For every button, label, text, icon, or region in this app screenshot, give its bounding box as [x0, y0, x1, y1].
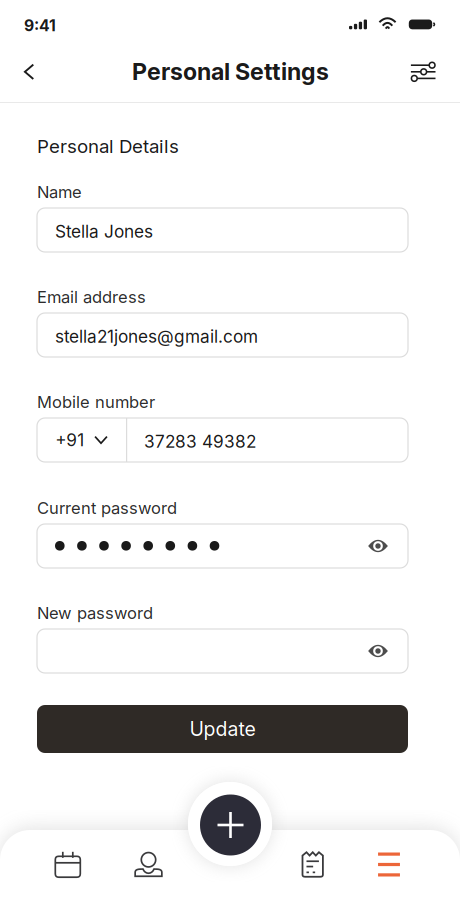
button[interactable]: Update: [37, 705, 408, 753]
button[interactable]: Calendar: [40, 838, 96, 890]
staticText: 37283 49382: [144, 431, 256, 452]
staticText: Name: [37, 182, 82, 202]
staticText: Stella Jones: [55, 221, 153, 242]
staticText: 9:41: [24, 16, 56, 35]
staticText: New password: [37, 603, 153, 623]
button[interactable]: Menu: [361, 838, 417, 890]
staticText: Current password: [37, 498, 177, 518]
button[interactable]: Profile: [120, 838, 176, 890]
button[interactable]: Add: [200, 794, 261, 855]
staticText: Mobile number: [37, 392, 155, 412]
staticText: +91: [55, 430, 84, 450]
staticText: Personal Details: [37, 135, 179, 158]
button[interactable]: Country code +91: [37, 418, 126, 462]
button[interactable]: Back: [7, 50, 51, 94]
staticText: stella21jones@gmail.com: [55, 326, 258, 347]
button[interactable]: Show new password: [362, 635, 394, 667]
button[interactable]: Bills: [285, 838, 341, 890]
staticText: Update: [189, 717, 255, 741]
staticText: Email address: [37, 287, 146, 307]
button[interactable]: Filter settings: [401, 50, 445, 94]
staticText: Personal Settings: [132, 57, 329, 86]
button[interactable]: Show current password: [362, 530, 394, 562]
